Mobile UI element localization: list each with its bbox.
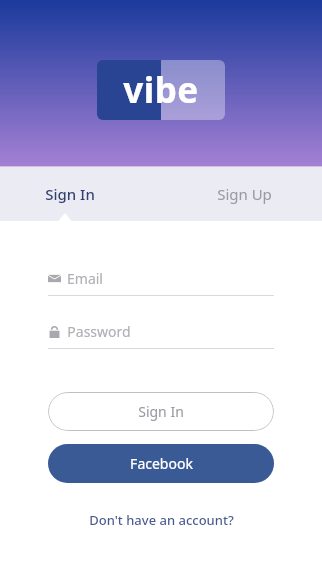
staticText: Email — [67, 269, 103, 288]
button[interactable]: Sign Up — [161, 166, 322, 221]
staticText: Password — [67, 322, 131, 341]
staticText: vibe — [123, 66, 199, 114]
staticText: Sign Up — [217, 184, 272, 204]
staticText: Don't have an account? — [89, 511, 234, 529]
staticText: Facebook — [130, 454, 193, 473]
button[interactable]: Email — [48, 265, 274, 296]
button[interactable]: Sign In — [0, 166, 161, 221]
staticText: Sign In — [45, 184, 95, 204]
button[interactable]: Sign In — [48, 392, 274, 431]
button[interactable]: Don't have an account? — [0, 505, 322, 535]
button[interactable]: Facebook — [48, 444, 274, 483]
staticText: Sign In — [138, 402, 184, 421]
button[interactable]: Password — [48, 318, 274, 349]
